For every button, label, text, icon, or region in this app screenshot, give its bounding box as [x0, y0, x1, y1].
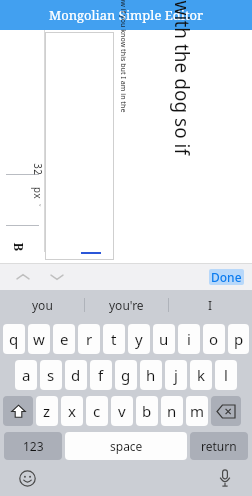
staticText: r: [86, 329, 93, 349]
staticText: space: [110, 438, 143, 454]
button[interactable]: I don't know if you know this but I am i…: [45, 32, 114, 260]
button[interactable]: c: [86, 396, 108, 426]
staticText: k: [197, 365, 206, 385]
staticText: z: [43, 401, 51, 421]
button[interactable]: n: [161, 396, 183, 426]
staticText: Mongolian Simple Editor: [49, 6, 204, 24]
staticText: f: [98, 365, 104, 385]
button[interactable]: t: [103, 324, 125, 354]
staticText: a: [22, 365, 31, 385]
staticText: c: [93, 401, 101, 421]
staticText: q: [9, 329, 19, 349]
staticText: s: [47, 365, 55, 385]
staticText: you: [32, 297, 53, 313]
button[interactable]: Done: [211, 269, 242, 285]
staticText: g: [121, 365, 131, 385]
staticText: w: [33, 329, 45, 349]
button[interactable]: you're: [84, 290, 168, 320]
staticText: x: [68, 401, 76, 421]
button[interactable]: x: [61, 396, 83, 426]
staticText: B: [9, 242, 27, 251]
button[interactable]: Emoji: [14, 465, 40, 491]
staticText: Done: [211, 269, 242, 285]
staticText: n: [167, 401, 177, 421]
button[interactable]: p: [228, 324, 249, 354]
button[interactable]: d: [65, 360, 87, 390]
button[interactable]: g: [115, 360, 137, 390]
button[interactable]: I: [168, 290, 252, 320]
button[interactable]: i: [178, 324, 200, 354]
button[interactable]: 32 px: [0, 175, 45, 225]
button[interactable]: y: [128, 324, 150, 354]
staticText: j: [174, 365, 178, 385]
staticText: u: [159, 329, 169, 349]
staticText: h: [146, 365, 156, 385]
button[interactable]: v: [111, 396, 133, 426]
staticText: ˅: [32, 204, 44, 207]
staticText: t: [111, 329, 117, 349]
button[interactable]: w: [28, 324, 50, 354]
staticText: I: [208, 297, 213, 313]
button[interactable]: e: [53, 324, 75, 354]
button[interactable]: f: [90, 360, 112, 390]
button[interactable]: Bold: [0, 226, 45, 258]
staticText: return: [201, 438, 237, 454]
button[interactable]: a: [15, 360, 37, 390]
staticText: p: [234, 329, 244, 349]
button[interactable]: you: [0, 290, 84, 320]
button[interactable]: j: [165, 360, 187, 390]
staticText: 123: [23, 438, 44, 454]
button[interactable]: return: [190, 432, 248, 460]
staticText: e: [60, 329, 69, 349]
staticText: o: [209, 329, 219, 349]
button[interactable]: Dictation: [212, 465, 238, 491]
staticText: y: [135, 329, 143, 349]
button[interactable]: z: [36, 396, 58, 426]
staticText: d: [71, 365, 81, 385]
button[interactable]: Previous field: [10, 264, 36, 290]
staticText: 32 px: [31, 163, 45, 199]
button[interactable]: k: [190, 360, 212, 390]
staticText: m: [190, 401, 205, 421]
button[interactable]: b: [136, 396, 158, 426]
button[interactable]: u: [153, 324, 175, 354]
button[interactable]: o: [203, 324, 225, 354]
staticText: b: [142, 401, 152, 421]
button[interactable]: l: [215, 360, 237, 390]
button[interactable]: m: [186, 396, 208, 426]
button[interactable]: q: [3, 324, 25, 354]
button[interactable]: 123: [4, 432, 62, 460]
button[interactable]: Shift: [3, 396, 33, 426]
button[interactable]: r: [78, 324, 100, 354]
button[interactable]: Next field: [44, 264, 70, 290]
staticText: middle with the dog so if: [169, 0, 195, 156]
staticText: I don't know if you know this but I am i…: [117, 0, 127, 112]
button[interactable]: space: [65, 432, 187, 460]
button[interactable]: Delete: [211, 396, 241, 426]
button[interactable]: h: [140, 360, 162, 390]
staticText: v: [118, 401, 126, 421]
button[interactable]: s: [40, 360, 62, 390]
staticText: i: [187, 329, 191, 349]
staticText: l: [224, 365, 228, 385]
button[interactable]: Courier New: [0, 44, 45, 174]
staticText: you're: [109, 297, 144, 313]
